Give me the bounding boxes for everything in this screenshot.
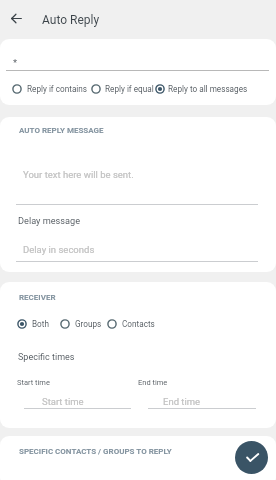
staticText: Contacts	[122, 319, 155, 329]
button[interactable]: Both	[17, 315, 49, 333]
button[interactable]: Reply if equal	[91, 80, 154, 98]
button[interactable]: Groups	[60, 315, 102, 333]
staticText: Start time	[17, 378, 50, 387]
staticText: Start time	[42, 396, 84, 407]
button[interactable]: Reply to all messages	[155, 80, 248, 98]
staticText: SPECIFIC CONTACTS / GROUPS TO REPLY	[19, 447, 172, 456]
staticText: RECEIVER	[19, 293, 56, 302]
staticText: End time	[138, 378, 168, 387]
staticText: Reply if equal	[105, 84, 154, 94]
staticText: Both	[32, 319, 49, 329]
staticText: Groups	[75, 319, 102, 329]
staticText: Reply to all messages	[168, 84, 248, 94]
staticText: Reply if contains	[27, 84, 88, 94]
staticText: Delay in seconds	[23, 244, 95, 255]
staticText: End time	[163, 396, 201, 407]
staticText: AUTO REPLY MESSAGE	[19, 126, 104, 135]
button[interactable]: Reply if contains	[12, 80, 88, 98]
staticText: *	[13, 57, 18, 68]
button[interactable]: Save	[235, 441, 268, 474]
staticText: Auto Reply	[42, 13, 100, 27]
button[interactable]: Back	[4, 6, 28, 30]
staticText: Your text here will be sent.	[23, 169, 134, 180]
button[interactable]: Contacts	[107, 315, 155, 333]
staticText: Delay message	[18, 215, 81, 226]
staticText: Specific times	[18, 352, 75, 363]
